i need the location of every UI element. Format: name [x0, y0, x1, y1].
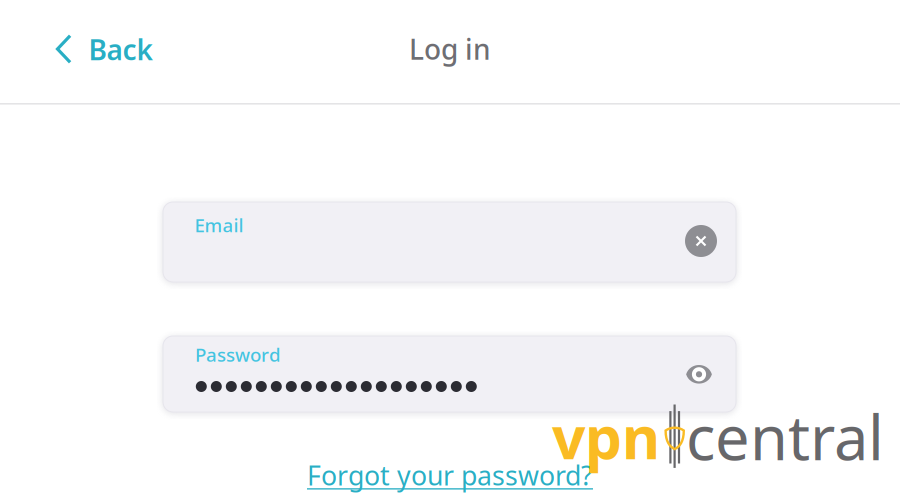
staticText: Password	[195, 342, 281, 367]
button[interactable]: Password	[163, 336, 736, 412]
staticText: Log in	[409, 30, 491, 68]
staticText: Email	[194, 213, 243, 237]
staticText: central	[686, 396, 884, 477]
button[interactable]: Clear email	[685, 225, 717, 257]
staticText: Forgot your password?	[307, 457, 593, 493]
button[interactable]: Show password	[685, 363, 712, 385]
button[interactable]: Email	[163, 202, 736, 282]
staticText: Back	[88, 31, 152, 68]
button[interactable]: Forgot your password?	[307, 457, 593, 493]
staticText: vpn	[552, 397, 660, 475]
button[interactable]: Back	[40, 19, 170, 79]
